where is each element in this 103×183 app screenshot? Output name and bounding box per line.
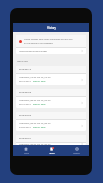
staticText: Approved $10.00 out of $10.00 xyxy=(19,76,51,79)
staticText: Approved $30.00 out of $30.00 xyxy=(19,143,51,145)
staticText: Health benefits account images xyxy=(19,50,48,53)
button[interactable]: 2019-04-02 xyxy=(16,112,86,131)
other: Settings xyxy=(75,147,79,151)
staticText: Select a claim xyxy=(17,60,28,62)
staticText: Status: Paid xyxy=(33,103,46,106)
button[interactable]: Home xyxy=(13,145,39,156)
staticText: History xyxy=(47,26,56,30)
staticText: 05/10/2019 xyxy=(19,103,33,106)
button[interactable]: 2019-06-12 xyxy=(16,66,86,85)
staticText: 06/18/2019 xyxy=(19,80,33,83)
button[interactable]: Settings xyxy=(64,145,89,156)
staticText: in the queue to be reviewed. xyxy=(24,42,54,45)
staticText: Settings xyxy=(73,152,80,154)
staticText: 2019-03-01 xyxy=(19,137,31,140)
button[interactable]: 2019-03-01 xyxy=(16,135,86,145)
button[interactable]: Health benefits account images xyxy=(16,48,86,54)
staticText: 04/09/2019 xyxy=(19,126,33,129)
staticText: 2019-06-12 xyxy=(19,68,31,71)
staticText: 2019-04-02 xyxy=(19,114,31,117)
staticText: 2019-05-03 xyxy=(19,91,31,94)
staticText: Approved $55.00 out of $70.00 xyxy=(19,99,51,102)
button[interactable]: History xyxy=(13,23,89,32)
other: History xyxy=(50,147,54,151)
staticText: These images have been submitted but are… xyxy=(24,38,73,41)
staticText: Status: Paid xyxy=(33,80,46,83)
staticText: Home xyxy=(24,152,29,154)
button[interactable]: 2019-05-03 xyxy=(16,89,86,108)
button[interactable]: History xyxy=(39,145,64,156)
other: Home xyxy=(24,147,28,151)
staticText: Status: Paid xyxy=(33,126,46,129)
staticText: History xyxy=(49,152,55,154)
staticText: Approved $25.00 out of $25.00 xyxy=(19,122,51,125)
